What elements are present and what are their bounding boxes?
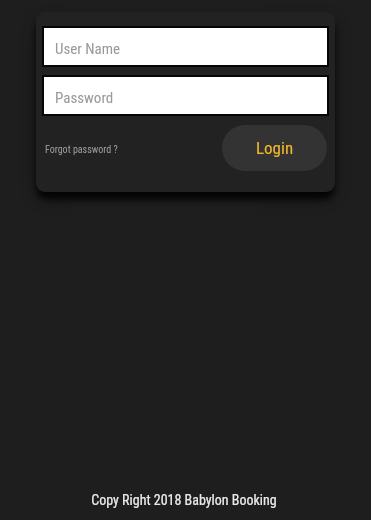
staticText: User Name — [55, 40, 121, 58]
staticText: Login — [256, 138, 294, 158]
button[interactable]: Login — [222, 125, 327, 171]
staticText: Password — [55, 89, 114, 107]
staticText: Forgot password ? — [45, 144, 118, 156]
button[interactable]: Forgot password ? — [44, 136, 122, 160]
button[interactable]: User Name — [42, 26, 329, 67]
staticText: Copy Right 2018 Babylon Booking — [91, 492, 277, 508]
button[interactable]: Password — [42, 75, 329, 116]
